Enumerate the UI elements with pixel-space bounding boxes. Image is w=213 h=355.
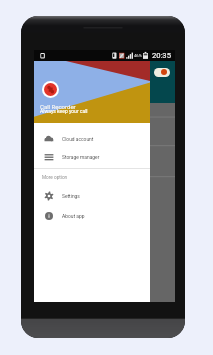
staticText: Settings [62,193,80,199]
staticText: Call Recorder [40,103,76,110]
staticText: 46% [134,53,142,58]
staticText: About app [62,213,85,219]
staticText: Always keep your call [40,108,88,114]
staticText: Cloud account [62,136,94,142]
button[interactable]: Storage manager [34,148,150,166]
staticText: Storage manager [62,154,100,160]
button[interactable]: Settings [34,187,150,205]
staticText: More option [42,175,68,181]
button[interactable]: Start recording [154,68,170,77]
button[interactable]: Cloud account [34,130,150,148]
staticText: 20:35 [152,51,171,60]
button[interactable]: About app [34,207,150,225]
